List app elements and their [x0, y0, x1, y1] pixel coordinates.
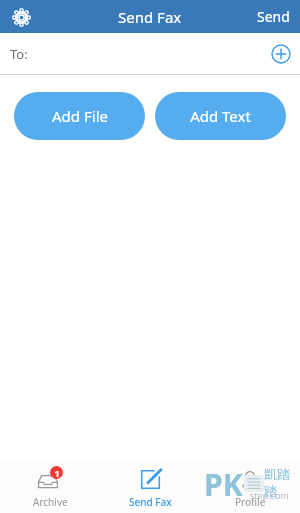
button[interactable]: Send [247, 0, 300, 33]
staticText: Archive [33, 495, 68, 509]
staticText: 凱踏踏 [264, 466, 300, 500]
staticText: Send [257, 7, 290, 26]
staticText: PK [204, 464, 243, 505]
button[interactable]: Add recipient [269, 42, 293, 66]
button[interactable]: Add File [14, 92, 145, 140]
staticText: Add File [52, 106, 108, 126]
staticText: Send Fax [118, 7, 182, 27]
button[interactable]: 1 [0, 462, 100, 513]
button[interactable]: Settings [6, 2, 36, 32]
button[interactable]: Add Text [155, 92, 286, 140]
button[interactable]: To: [0, 33, 300, 75]
staticText: 1 [54, 467, 60, 479]
staticText: Add Text [190, 106, 251, 126]
staticText: Send Fax [129, 495, 172, 509]
button[interactable]: Send Fax [100, 462, 200, 513]
staticText: Profile [235, 495, 266, 509]
staticText: To: [10, 45, 28, 63]
button[interactable]: Profile [200, 462, 300, 513]
staticText: step.com [250, 489, 289, 501]
